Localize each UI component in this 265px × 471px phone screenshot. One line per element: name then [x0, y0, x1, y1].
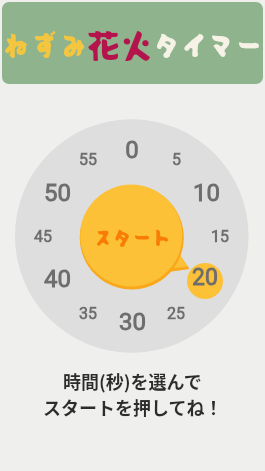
staticText: 花火 — [87, 20, 153, 67]
button[interactable]: 50 — [40, 178, 74, 208]
staticText: ねずみ — [2, 23, 87, 64]
button[interactable]: ねずみ — [2, 2, 263, 84]
staticText: 20 — [192, 264, 218, 291]
staticText: 10 — [193, 179, 220, 207]
staticText: 55 — [79, 150, 97, 169]
button[interactable]: 45 — [26, 221, 60, 251]
staticText: 15 — [211, 227, 229, 246]
button[interactable]: 20 — [189, 264, 223, 294]
button[interactable]: 0 — [115, 135, 149, 165]
button[interactable]: 20 — [187, 263, 223, 299]
staticText: 45 — [34, 227, 52, 246]
button[interactable]: 10 — [189, 178, 223, 208]
button[interactable]: 35 — [71, 298, 105, 328]
staticText: 20 — [193, 265, 220, 293]
button[interactable]: 5 — [159, 144, 193, 174]
staticText: 5 — [172, 150, 181, 169]
staticText: 25 — [167, 304, 185, 323]
button[interactable]: 15 — [203, 221, 237, 251]
staticText: スタートを押してね！ — [43, 394, 223, 420]
staticText: スタート — [93, 222, 172, 250]
staticText: 30 — [119, 308, 146, 336]
staticText: 40 — [44, 265, 71, 293]
button[interactable]: 30 — [115, 307, 149, 337]
button[interactable]: スタート — [80, 184, 184, 288]
button[interactable]: 55 — [71, 144, 105, 174]
button[interactable]: 25 — [159, 298, 193, 328]
staticText: 0 — [125, 136, 139, 164]
button[interactable]: 40 — [40, 264, 74, 294]
staticText: 35 — [79, 304, 97, 323]
staticText: 時間(秒)を選んで — [63, 368, 202, 394]
staticText: 50 — [44, 179, 71, 207]
staticText: タイマー — [153, 24, 263, 64]
